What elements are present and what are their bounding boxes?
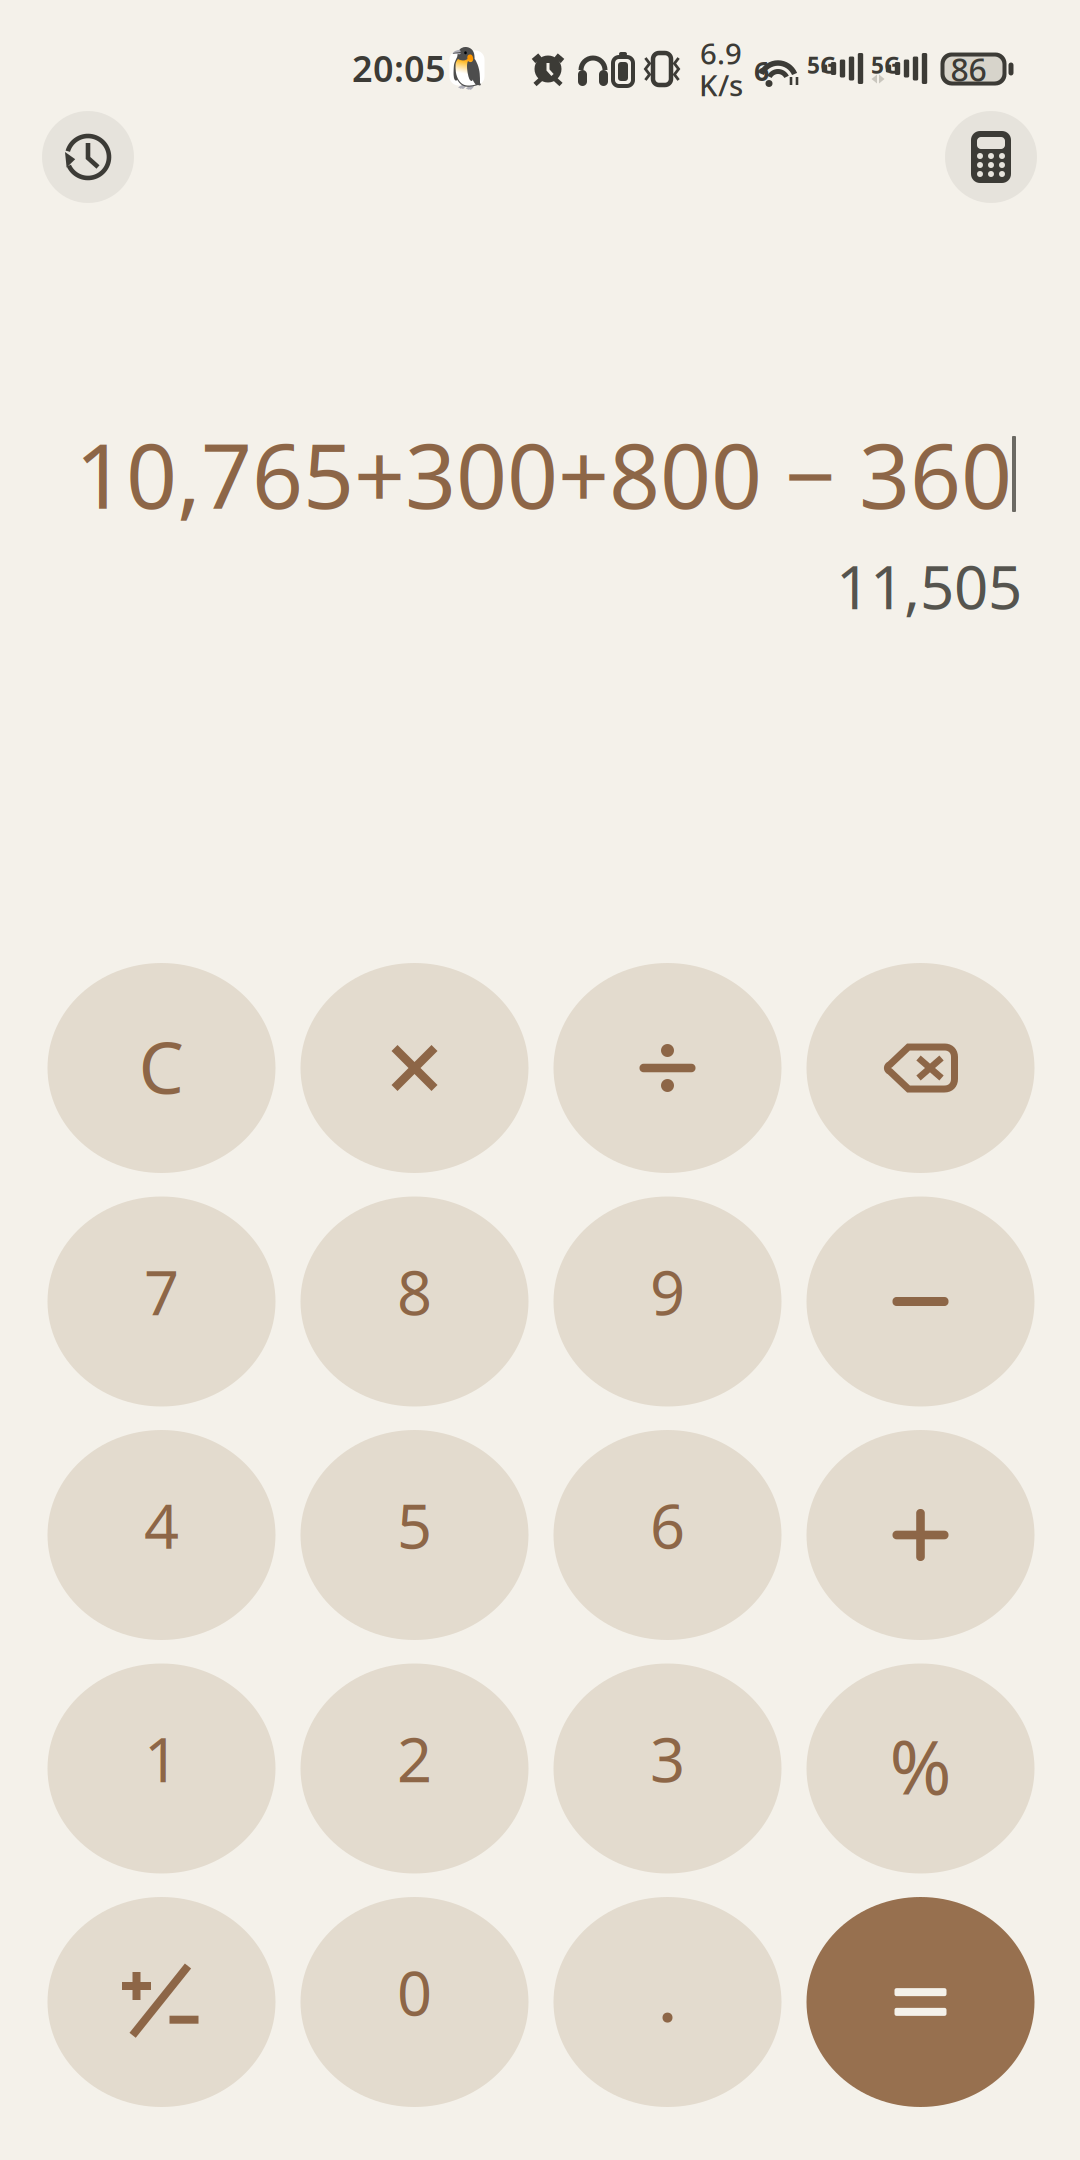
button[interactable]: C [47, 963, 275, 1173]
button[interactable]: % [806, 1663, 1034, 1873]
button[interactable]: 5 [300, 1430, 528, 1640]
staticText: K/s [699, 65, 743, 104]
button[interactable]: Divide [553, 963, 781, 1173]
staticText: 8 [397, 1251, 432, 1332]
button[interactable]: 6 [553, 1430, 781, 1640]
button[interactable]: Minus [806, 1196, 1034, 1406]
staticText: 7 [144, 1251, 179, 1332]
button[interactable]: 2 [300, 1663, 528, 1873]
button[interactable]: Plus [806, 1430, 1034, 1640]
staticText: C [138, 1018, 184, 1114]
staticText: % [889, 1716, 951, 1815]
button[interactable]: Decimal point [553, 1897, 781, 2107]
staticText: 6.9 [700, 33, 742, 72]
button[interactable]: Multiply [300, 963, 528, 1173]
button[interactable]: History [42, 111, 134, 203]
staticText: 86 [950, 48, 986, 90]
staticText: 3 [650, 1718, 685, 1799]
button[interactable]: Plus minus [47, 1897, 275, 2107]
staticText: 4 [144, 1484, 179, 1566]
button[interactable]: 0 [300, 1897, 528, 2107]
staticText: 🐧 [442, 45, 492, 91]
button[interactable]: 1 [47, 1663, 275, 1873]
button[interactable]: Delete [806, 963, 1034, 1173]
staticText: 2 [397, 1718, 432, 1799]
button[interactable]: 7 [47, 1196, 275, 1406]
staticText: 0 [397, 1951, 432, 2033]
staticText: 6 [650, 1484, 685, 1566]
staticText: 1 [144, 1718, 179, 1799]
staticText: 20:05 [352, 44, 446, 92]
staticText: 11,505 [836, 546, 1022, 626]
staticText: 5G [807, 50, 836, 80]
staticText: 10,765+300+800 − 360 [75, 415, 1012, 533]
staticText: 5 [397, 1484, 432, 1566]
button[interactable]: 9 [553, 1196, 781, 1406]
button[interactable]: Scientific calculator [945, 111, 1037, 203]
button[interactable]: Equals [806, 1897, 1034, 2107]
staticText: 5G [871, 50, 900, 80]
button[interactable]: 4 [47, 1430, 275, 1640]
staticText: 6 [754, 53, 769, 88]
staticText: 9 [650, 1251, 685, 1332]
button[interactable]: 3 [553, 1663, 781, 1873]
button[interactable]: 8 [300, 1196, 528, 1406]
